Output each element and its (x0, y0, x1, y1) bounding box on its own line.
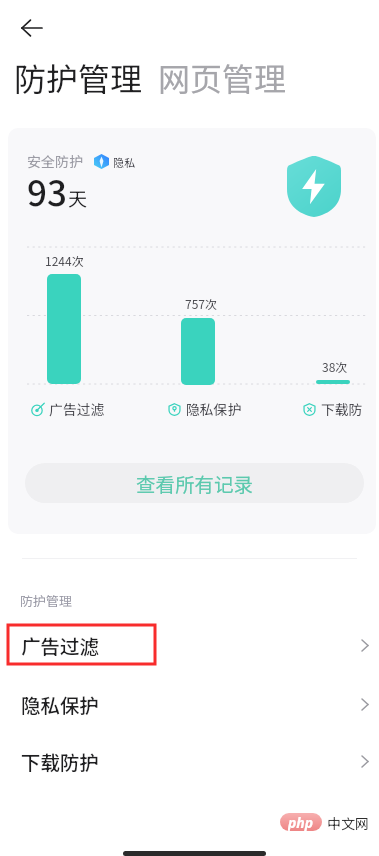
staticText: 广告过滤 (49, 399, 105, 419)
staticText: 757次 (185, 295, 217, 312)
staticText: 防护管理 (20, 591, 73, 610)
button[interactable]: 广告过滤 (0, 617, 379, 673)
button[interactable]: 隐私保护 (0, 676, 379, 732)
staticText: 中文网 (327, 813, 369, 833)
staticText: 38次 (322, 358, 348, 375)
staticText: 1244次 (45, 252, 84, 269)
staticText: 93 (27, 165, 67, 216)
staticText: 下载防护 (21, 747, 100, 775)
button[interactable]: 查看所有记录 (25, 463, 364, 503)
staticText: 下载防护 (321, 399, 364, 419)
staticText: 隐私保护 (186, 399, 242, 419)
staticText: 广告过滤 (21, 631, 100, 659)
staticText: php (288, 813, 314, 831)
staticText: 网页管理 (158, 54, 287, 100)
staticText: 隐私保护 (21, 690, 100, 718)
staticText: 天 (68, 184, 88, 212)
staticText: 防护管理 (14, 54, 143, 100)
staticText: 安全防护 (27, 151, 83, 171)
button[interactable]: Back (9, 8, 53, 48)
staticText: 查看所有记录 (136, 469, 254, 497)
button[interactable]: 下载防护 (0, 733, 379, 789)
staticText: 隐私 (113, 154, 135, 170)
